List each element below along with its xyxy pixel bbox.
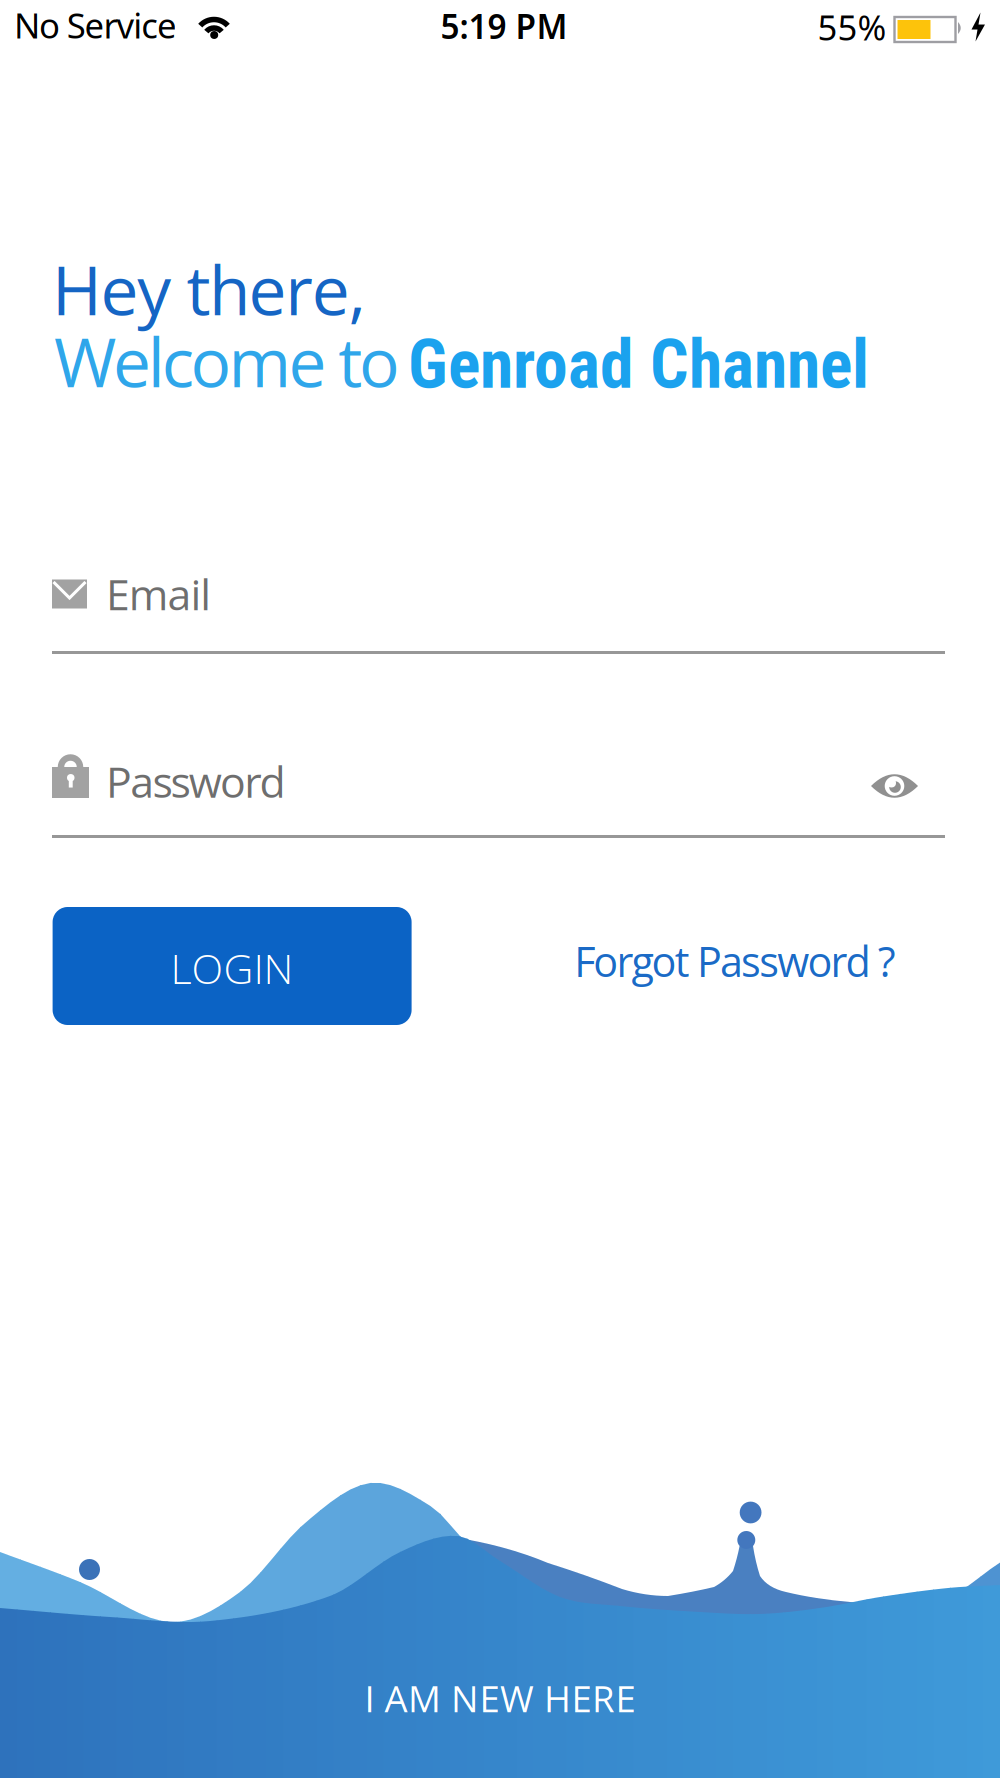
staticText: LOGIN: [171, 940, 294, 996]
staticText: Email: [106, 564, 211, 623]
button[interactable]: LOGIN: [53, 907, 412, 1025]
button[interactable]: Password: [52, 752, 945, 839]
button[interactable]: Forgot Password ?: [574, 933, 896, 989]
staticText: 5:19 PM: [440, 4, 567, 48]
button[interactable]: Email: [52, 576, 945, 654]
button[interactable]: Show password: [871, 772, 918, 800]
staticText: Hey there,: [52, 243, 365, 335]
staticText: 55%: [817, 4, 886, 50]
staticText: Forgot Password ?: [574, 933, 896, 989]
button[interactable]: I AM NEW HERE: [364, 1673, 635, 1723]
staticText: Welcome to: [54, 315, 400, 407]
staticText: Password: [106, 752, 285, 810]
staticText: I AM NEW HERE: [364, 1673, 635, 1723]
staticText: Genroad Channel: [408, 325, 869, 404]
staticText: No Service: [14, 2, 177, 48]
